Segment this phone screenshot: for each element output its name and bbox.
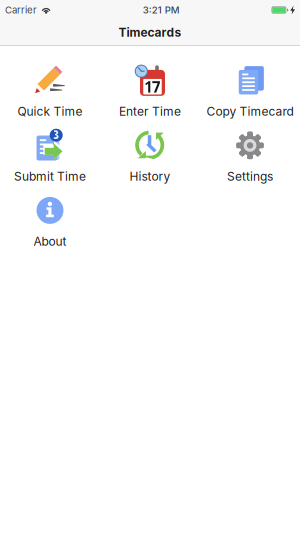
staticText: Carrier	[5, 4, 37, 16]
button[interactable]: History	[100, 123, 200, 188]
staticText: Copy Timecard	[206, 104, 293, 118]
staticText: Submit Time	[14, 169, 86, 183]
button[interactable]: Settings	[200, 123, 300, 188]
staticText: Quick Time	[17, 104, 82, 118]
staticText: Timecards	[118, 25, 181, 40]
staticText: Enter Time	[119, 104, 181, 118]
button[interactable]: Copy Timecard	[200, 58, 300, 123]
button[interactable]: Submit Time	[0, 123, 100, 188]
staticText: Settings	[227, 169, 273, 183]
button[interactable]: Enter Time	[100, 58, 200, 123]
staticText: 3:21 PM	[143, 4, 180, 16]
staticText: History	[129, 169, 170, 183]
button[interactable]: Quick Time	[0, 58, 100, 123]
staticText: About	[33, 234, 66, 248]
button[interactable]: About	[0, 188, 100, 253]
